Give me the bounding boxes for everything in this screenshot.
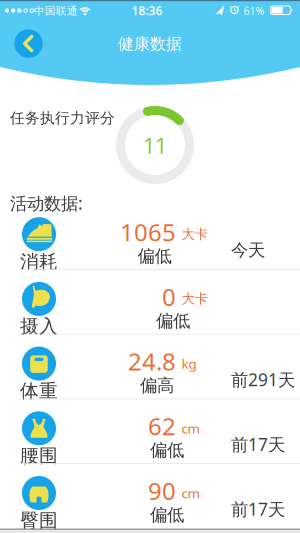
staticText: 1065 (120, 216, 176, 248)
staticText: 大卡 (181, 291, 207, 307)
staticText: 前17天 (231, 497, 285, 520)
staticText: 偏低 (150, 440, 184, 461)
button[interactable]: 臀围 (0, 464, 300, 529)
staticText: 前291天 (231, 368, 295, 391)
staticText: 活动数据: (10, 191, 83, 214)
staticText: 中国联通 (34, 4, 78, 17)
staticText: 90 (148, 475, 176, 507)
staticText: 摄入 (20, 315, 58, 338)
button[interactable]: 腰围 (0, 399, 300, 464)
staticText: 偏低 (156, 310, 190, 332)
staticText: kg (181, 355, 196, 372)
staticText: 0 (162, 281, 176, 313)
staticText: 18:36 (131, 2, 162, 18)
staticText: 大卡 (181, 226, 207, 242)
button[interactable]: 消耗 (0, 205, 300, 270)
staticText: 偏高 (140, 375, 174, 396)
staticText: 61% (243, 3, 264, 18)
button[interactable]: 体重 (0, 335, 300, 399)
staticText: 11 (143, 131, 167, 160)
staticText: cm (181, 484, 199, 502)
staticText: 62 (148, 410, 176, 442)
staticText: 偏低 (137, 246, 171, 267)
staticText: cm (181, 419, 199, 437)
staticText: 任务执行力评分 (10, 109, 115, 127)
staticText: 臀围 (20, 509, 58, 532)
staticText: 腰围 (20, 444, 58, 467)
staticText: 偏低 (150, 504, 184, 526)
staticText: 24.8 (128, 345, 176, 377)
button[interactable]: 摄入 (0, 270, 300, 335)
staticText: 今天 (231, 240, 265, 261)
button[interactable]: Back (14, 29, 43, 58)
staticText: 消耗 (20, 250, 58, 273)
staticText: 健康数据 (118, 34, 182, 54)
staticText: 体重 (20, 380, 58, 402)
staticText: 前17天 (231, 433, 285, 456)
